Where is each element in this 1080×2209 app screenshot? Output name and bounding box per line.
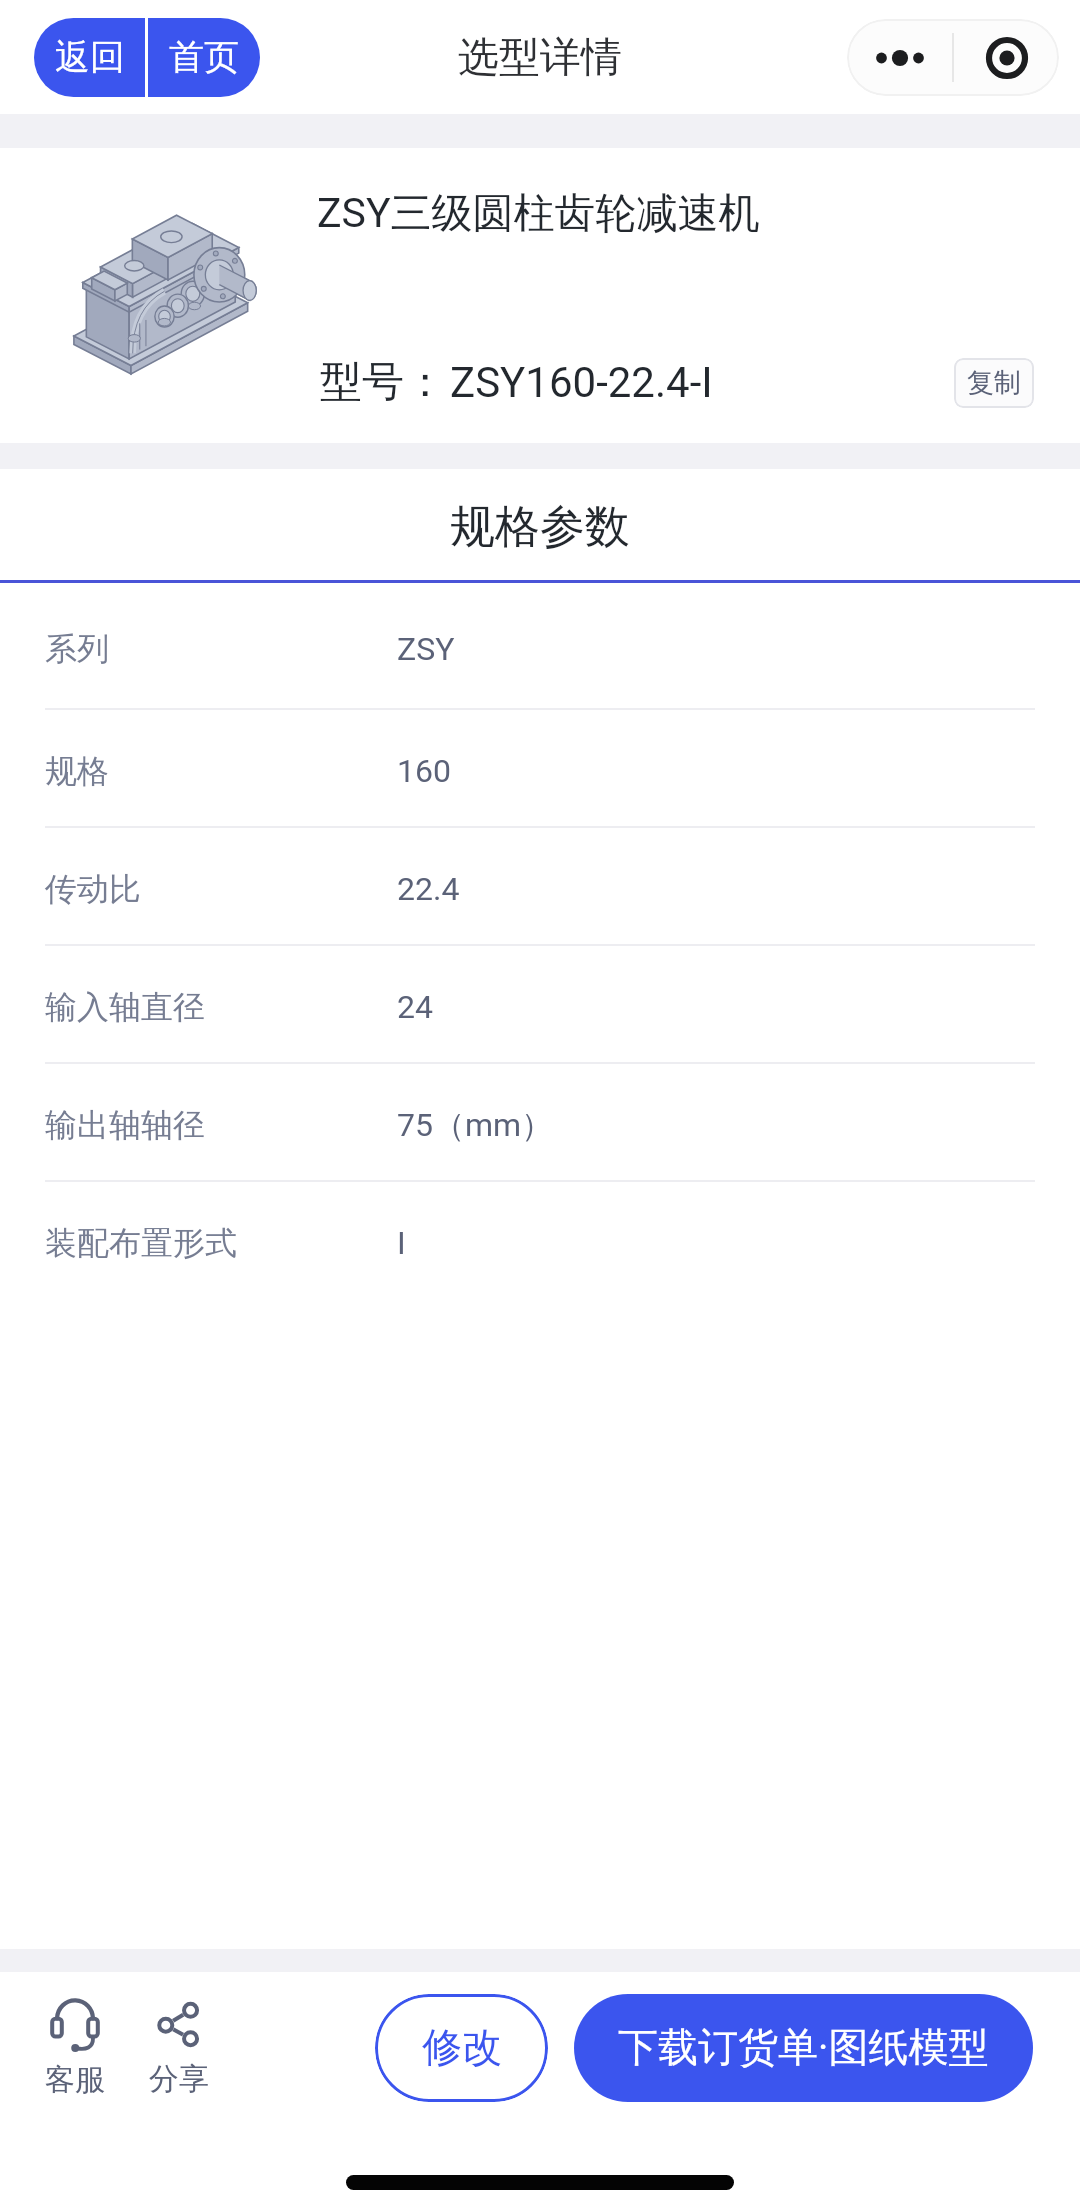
button[interactable]: 装配布置形式 xyxy=(0,1182,1080,1298)
staticText: 输入轴直径 xyxy=(45,987,397,1027)
staticText: 输出轴轴径 xyxy=(45,1105,397,1145)
staticText: 装配布置形式 xyxy=(45,1223,397,1263)
button[interactable]: 输出轴轴径 xyxy=(0,1064,1080,1180)
button[interactable]: 规格 xyxy=(0,710,1080,826)
staticText: ZSY xyxy=(397,630,455,668)
staticText: 选型详情 xyxy=(458,32,622,84)
staticText: 75（mm） xyxy=(397,1105,554,1145)
button[interactable]: 复制 xyxy=(954,358,1034,408)
button[interactable]: 输入轴直径 xyxy=(0,946,1080,1062)
button[interactable]: Close mini program xyxy=(954,19,1059,96)
staticText: 复制 xyxy=(967,366,1021,400)
staticText: ZSY三级圆柱齿轮减速机 xyxy=(317,188,760,240)
staticText: 返回 xyxy=(55,35,125,79)
staticText: 24 xyxy=(397,988,433,1026)
button[interactable]: 修改 xyxy=(375,1994,548,2102)
button[interactable]: 客服 xyxy=(27,1996,123,2108)
staticText: 规格参数 xyxy=(450,499,630,556)
button[interactable]: 首页 xyxy=(148,18,260,97)
staticText: 客服 xyxy=(45,2061,105,2099)
staticText: I xyxy=(397,1224,406,1262)
staticText: 下载订货单·图纸模型 xyxy=(618,2022,989,2072)
button[interactable]: 系列 xyxy=(0,583,1080,708)
staticText: 首页 xyxy=(169,35,239,79)
staticText: ZSY160-22.4-I xyxy=(450,358,713,407)
staticText: 规格 xyxy=(45,751,397,791)
staticText: 传动比 xyxy=(45,869,397,909)
button[interactable]: 返回 xyxy=(34,18,145,97)
staticText: 22.4 xyxy=(397,870,460,908)
staticText: 修改 xyxy=(422,2022,502,2072)
staticText: 分享 xyxy=(149,2060,209,2098)
button[interactable]: 分享 xyxy=(131,1996,227,2108)
button[interactable]: More options xyxy=(847,19,952,96)
staticText: 160 xyxy=(397,752,451,790)
staticText: 型号： xyxy=(320,356,446,409)
button[interactable]: 下载订货单·图纸模型 xyxy=(574,1994,1033,2102)
staticText: 系列 xyxy=(45,629,397,669)
button[interactable]: 传动比 xyxy=(0,828,1080,944)
